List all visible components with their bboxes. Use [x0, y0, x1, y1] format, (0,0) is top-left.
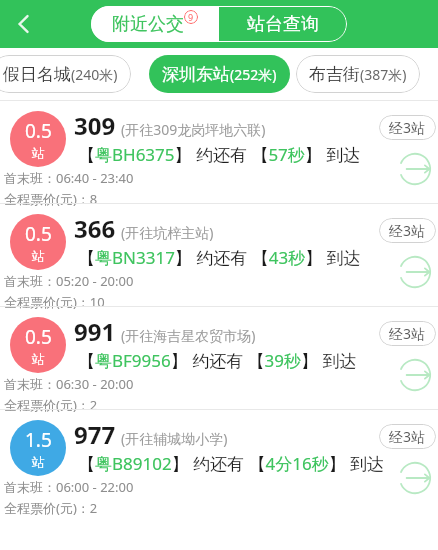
staticText: 全程票价(元)：8	[4, 190, 98, 208]
staticText: 站	[32, 454, 45, 470]
staticText: 站	[32, 248, 45, 264]
button[interactable]: 经3站	[379, 424, 436, 449]
staticText: 假日名城	[3, 64, 71, 85]
button[interactable]: 附近公交	[91, 6, 219, 42]
staticText: 首末班：06:00 - 22:00	[4, 478, 134, 496]
staticText: 309	[74, 109, 116, 142]
staticText: 全程票价(元)：2	[4, 499, 98, 517]
staticText: 977	[74, 418, 116, 451]
staticText: 深圳东站	[162, 64, 230, 85]
button[interactable]: 经3站	[379, 218, 436, 243]
button[interactable]: Back	[0, 0, 48, 48]
staticText: 经3站	[389, 118, 426, 137]
staticText: 附近公交	[112, 13, 184, 36]
button[interactable]: Go to route detail	[395, 458, 435, 498]
staticText: 【粤BF9956】 约还有 【39秒】 到达	[78, 349, 357, 372]
staticText: (开往309龙岗坪地六联)	[121, 120, 266, 139]
staticText: 经3站	[389, 324, 426, 343]
staticText: 991	[74, 315, 116, 348]
staticText: 【粤BN3317】 约还有 【43秒】 到达	[78, 246, 361, 269]
staticText: (387米)	[360, 65, 407, 84]
button[interactable]: 1.5	[0, 410, 438, 512]
staticText: 经3站	[389, 221, 426, 240]
button[interactable]: 假日名城	[0, 55, 131, 93]
staticText: 0.5	[25, 118, 52, 144]
button[interactable]: 0.5	[0, 204, 438, 306]
staticText: (252米)	[230, 65, 277, 84]
staticText: 首末班：06:40 - 23:40	[4, 169, 134, 187]
button[interactable]: 经3站	[379, 115, 436, 140]
staticText: 布吉街	[309, 64, 360, 85]
staticText: 首末班：06:30 - 20:00	[4, 375, 134, 393]
button[interactable]: Go to route detail	[395, 149, 435, 189]
button[interactable]: Go to route detail	[395, 355, 435, 395]
staticText: 经3站	[389, 427, 426, 446]
staticText: (开往海吉星农贸市场)	[121, 326, 256, 345]
button[interactable]: Go to route detail	[395, 252, 435, 292]
staticText: 0.5	[25, 324, 52, 350]
staticText: 全程票价(元)：10	[4, 293, 105, 311]
button[interactable]: 站台查询	[219, 6, 347, 42]
staticText: 站	[32, 351, 45, 367]
button[interactable]: 深圳东站	[149, 55, 290, 93]
staticText: 【粤BH6375】 约还有 【57秒】 到达	[78, 143, 361, 166]
staticText: 站	[32, 145, 45, 161]
staticText: (开往坑梓主站)	[121, 223, 214, 242]
staticText: 0.5	[25, 221, 52, 247]
button[interactable]: 0.5	[0, 307, 438, 409]
staticText: 全程票价(元)：2	[4, 396, 98, 414]
button[interactable]: 0.5	[0, 101, 438, 203]
staticText: (开往辅城坳小学)	[121, 429, 228, 448]
button[interactable]: 经3站	[379, 321, 436, 346]
staticText: 【粤B89102】 约还有 【4分16秒】 到达	[78, 452, 385, 475]
staticText: 站台查询	[247, 13, 319, 36]
staticText: 1.5	[25, 427, 52, 453]
staticText: 首末班：05:20 - 20:00	[4, 272, 134, 290]
staticText: 9	[188, 11, 194, 23]
staticText: 366	[74, 212, 116, 245]
button[interactable]: 布吉街	[296, 55, 420, 93]
staticText: (240米)	[71, 65, 118, 84]
